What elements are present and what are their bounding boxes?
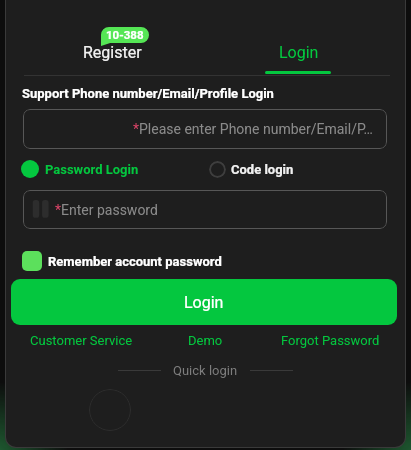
button[interactable]: Code login xyxy=(209,161,294,178)
button[interactable]: Remember account password xyxy=(22,251,222,271)
staticText: Login xyxy=(184,293,224,312)
button[interactable]: Demo xyxy=(188,333,223,348)
button[interactable]: *Please enter Phone number/Email/P… xyxy=(23,109,387,149)
staticText: Login xyxy=(279,43,319,62)
staticText: Password Login xyxy=(45,162,139,177)
button[interactable]: *Enter password xyxy=(23,190,387,229)
staticText: Register xyxy=(83,43,142,62)
button[interactable]: Password Login xyxy=(21,160,139,178)
button[interactable]: Forgot Password xyxy=(281,333,380,348)
staticText: Customer Service xyxy=(30,333,133,348)
staticText: Quick login xyxy=(173,363,238,378)
staticText: 10-388 xyxy=(106,28,144,41)
staticText: *Enter password xyxy=(55,202,158,218)
staticText: Forgot Password xyxy=(281,333,380,348)
button[interactable]: Login xyxy=(249,14,349,66)
button[interactable]: Login xyxy=(11,279,397,325)
button[interactable]: Register xyxy=(52,14,172,66)
staticText: Remember account password xyxy=(48,254,222,269)
staticText: Code login xyxy=(231,162,294,177)
button[interactable]: Customer Service xyxy=(30,333,133,348)
staticText: Demo xyxy=(188,333,223,348)
staticText: *Please enter Phone number/Email/P… xyxy=(133,121,373,137)
staticText: Support Phone number/Email/Profile Login xyxy=(22,86,274,101)
